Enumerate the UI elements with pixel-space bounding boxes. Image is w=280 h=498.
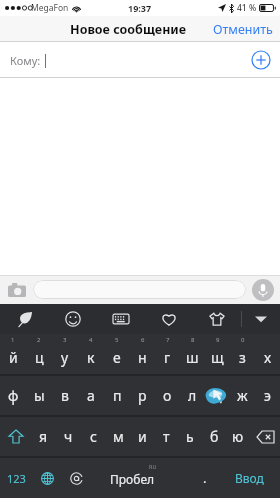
staticText: 2	[37, 336, 41, 344]
button[interactable]: х	[255, 334, 280, 374]
button[interactable]: 8	[180, 334, 205, 374]
staticText: ч	[64, 427, 73, 446]
button[interactable]: б	[202, 417, 226, 456]
staticText: х	[264, 348, 272, 367]
button[interactable]: Ввод	[219, 458, 280, 498]
staticText: 123	[7, 471, 26, 486]
button[interactable]	[33, 280, 246, 299]
staticText: 41 %	[237, 2, 257, 14]
button[interactable]: ю	[226, 417, 250, 456]
staticText: 5	[115, 336, 119, 344]
staticText: Ввод	[235, 470, 264, 486]
button[interactable]: и	[130, 417, 154, 456]
button[interactable]: 2	[26, 334, 52, 374]
staticText: ш	[186, 348, 199, 367]
button[interactable]: 3	[52, 334, 78, 374]
button[interactable]: Camera	[6, 279, 28, 301]
staticText: о	[163, 386, 172, 405]
button[interactable]: л	[180, 376, 205, 415]
button[interactable]: ч	[56, 417, 81, 456]
button[interactable]: 0	[230, 334, 255, 374]
staticText: 8	[191, 336, 195, 344]
button[interactable]: .	[190, 458, 219, 498]
staticText: к	[87, 348, 95, 367]
button[interactable]: At sign	[62, 458, 91, 498]
button[interactable]: 7	[155, 334, 180, 374]
staticText: 4	[89, 336, 93, 344]
button[interactable]: я	[31, 417, 56, 456]
staticText: Пробел	[110, 471, 155, 487]
button[interactable]: Пробел	[91, 458, 190, 498]
staticText: м	[113, 427, 124, 446]
staticText: ю	[232, 427, 244, 446]
staticText: 1	[11, 336, 15, 344]
button[interactable]: п	[104, 376, 130, 415]
staticText: RU	[149, 463, 157, 470]
button[interactable]: Stickers	[0, 304, 49, 334]
button[interactable]: Clothes	[193, 304, 241, 334]
staticText: в	[61, 386, 69, 405]
staticText: д	[213, 386, 222, 405]
button[interactable]: т	[154, 417, 178, 456]
button[interactable]: с	[81, 417, 106, 456]
button[interactable]: Voice input	[252, 279, 274, 301]
staticText: т	[163, 427, 170, 446]
staticText: ь	[186, 427, 194, 446]
button[interactable]: 4	[78, 334, 104, 374]
staticText: ц	[35, 348, 44, 367]
staticText: а	[87, 386, 95, 405]
staticText: э	[264, 386, 271, 405]
button[interactable]: в	[52, 376, 78, 415]
button[interactable]: Keyboard	[97, 304, 145, 334]
staticText: щ	[211, 348, 224, 367]
staticText: й	[9, 348, 18, 367]
staticText: Новое сообщение	[70, 21, 187, 38]
staticText: 9	[216, 336, 220, 344]
staticText: я	[39, 427, 48, 446]
button[interactable]: Backspace	[250, 417, 280, 456]
staticText: 3	[63, 336, 67, 344]
staticText: 19:37	[128, 2, 152, 14]
button[interactable]: о	[155, 376, 180, 415]
button[interactable]: Shift	[0, 417, 31, 456]
staticText: MegaFon	[31, 2, 69, 14]
button[interactable]: д	[205, 376, 230, 415]
button[interactable]: р	[130, 376, 155, 415]
staticText: е	[113, 348, 121, 367]
button[interactable]: 5	[104, 334, 130, 374]
button[interactable]: 6	[130, 334, 155, 374]
button[interactable]: э	[255, 376, 280, 415]
button[interactable]: 9	[205, 334, 230, 374]
staticText: с	[90, 427, 97, 446]
staticText: у	[61, 348, 69, 367]
button[interactable]: ж	[230, 376, 255, 415]
button[interactable]: Collapse	[242, 304, 280, 334]
staticText: 6	[141, 336, 145, 344]
staticText: л	[188, 386, 197, 405]
staticText: ф	[8, 386, 19, 405]
button[interactable]: м	[106, 417, 130, 456]
button[interactable]: Отменить	[206, 17, 280, 42]
staticText: г	[164, 348, 171, 367]
staticText: Отменить	[213, 21, 273, 38]
button[interactable]: ф	[0, 376, 26, 415]
button[interactable]: Change language	[33, 458, 62, 498]
staticText: и	[138, 427, 147, 446]
button[interactable]: Favourites	[145, 304, 193, 334]
staticText: п	[113, 386, 122, 405]
button[interactable]: а	[78, 376, 104, 415]
button[interactable]: 1	[0, 334, 26, 374]
staticText: ы	[34, 386, 45, 405]
staticText: 0	[241, 336, 245, 344]
staticText: Кому:	[10, 53, 41, 68]
staticText: р	[138, 386, 147, 405]
staticText: з	[239, 348, 246, 367]
button[interactable]: ь	[178, 417, 202, 456]
staticText: ж	[237, 386, 248, 405]
button[interactable]: ы	[26, 376, 52, 415]
button[interactable]: Add contact	[251, 50, 271, 70]
staticText: 7	[166, 336, 170, 344]
button[interactable]: Emoji	[49, 304, 97, 334]
staticText: н	[138, 348, 147, 367]
button[interactable]: 123	[0, 458, 33, 498]
